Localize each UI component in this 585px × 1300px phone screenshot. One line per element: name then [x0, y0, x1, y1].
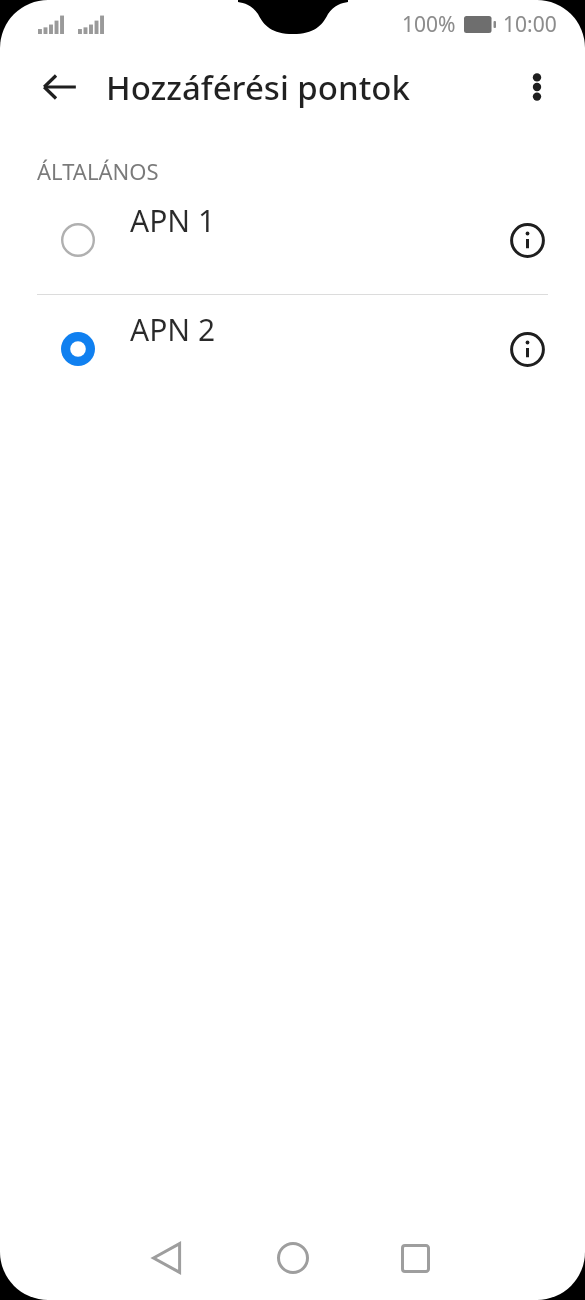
button[interactable]: Back [24, 51, 96, 123]
staticText: 100% [402, 10, 456, 39]
staticText: 10:00 [503, 10, 557, 39]
button[interactable]: Home [261, 1226, 325, 1290]
button[interactable]: More options [503, 53, 571, 121]
button[interactable]: Selected [46, 317, 110, 381]
staticText: APN 1 [130, 200, 216, 241]
button[interactable]: Back [135, 1226, 199, 1290]
button[interactable]: Recents [383, 1226, 447, 1290]
button[interactable]: Details [495, 208, 559, 272]
staticText: Hozzáférési pontok [106, 65, 410, 110]
staticText: APN 2 [130, 309, 216, 350]
button[interactable]: Not selected [46, 208, 110, 272]
button[interactable]: Selected [0, 295, 585, 403]
button[interactable]: Not selected [0, 186, 585, 294]
button[interactable]: Details [495, 317, 559, 381]
staticText: ÁLTALÁNOS [37, 156, 159, 186]
